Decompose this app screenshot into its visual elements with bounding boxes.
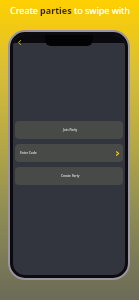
- staticText: Create parties to swipe with: [10, 4, 130, 16]
- button[interactable]: Back: [14, 37, 25, 48]
- staticText: Join Party: [63, 128, 78, 132]
- button[interactable]: Enter Code: [15, 144, 123, 162]
- staticText: Create Party: [61, 174, 80, 178]
- button[interactable]: Create Party: [15, 167, 123, 185]
- staticText: Enter Code: [20, 151, 37, 155]
- button[interactable]: Join Party: [15, 121, 123, 139]
